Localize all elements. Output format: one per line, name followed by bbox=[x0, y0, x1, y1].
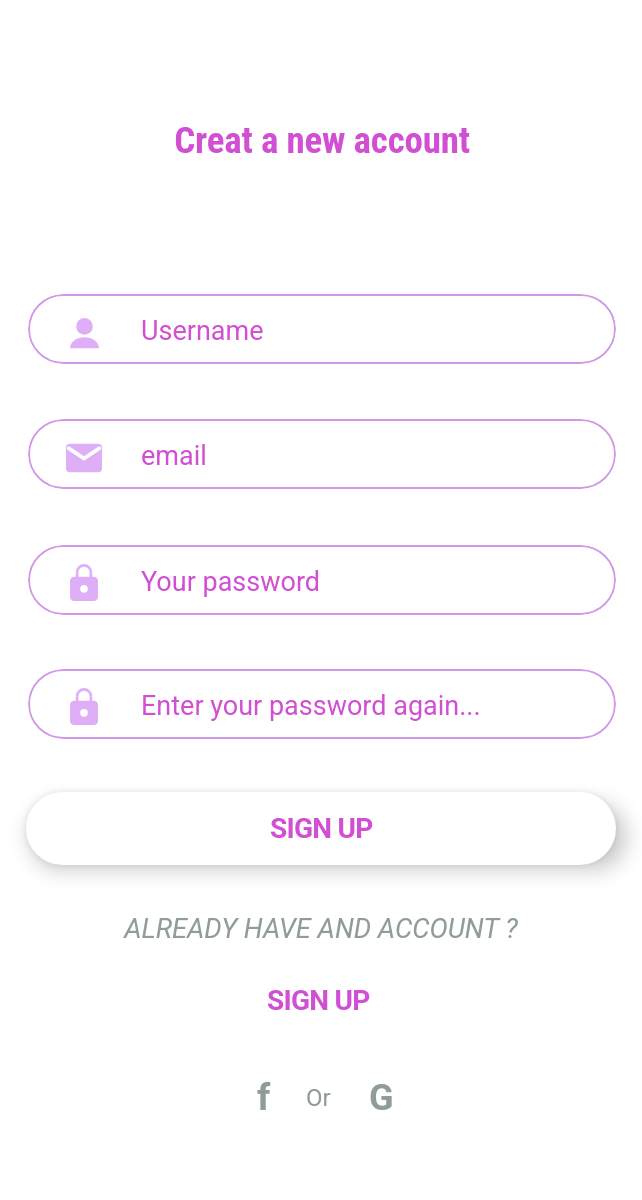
staticText: G bbox=[369, 1077, 394, 1119]
staticText: Your password bbox=[141, 566, 321, 598]
button[interactable]: Your password bbox=[28, 545, 616, 615]
staticText: Enter your password again... bbox=[141, 690, 481, 722]
staticText: Or bbox=[306, 1084, 331, 1112]
button[interactable]: Enter your password again... bbox=[28, 669, 616, 739]
button[interactable]: SIGN UP bbox=[26, 792, 616, 865]
button[interactable]: Username bbox=[28, 294, 616, 364]
button[interactable]: SIGN UP bbox=[257, 978, 380, 1023]
staticText: Creat a new account bbox=[1, 119, 642, 162]
button[interactable]: Sign up with Facebook bbox=[247, 1072, 281, 1123]
staticText: SIGN UP bbox=[270, 812, 373, 845]
staticText: Username bbox=[141, 315, 264, 347]
button[interactable]: email bbox=[28, 419, 616, 489]
staticText: ALREADY HAVE AND ACCOUNT ? bbox=[0, 913, 642, 945]
button[interactable]: Sign up with Google bbox=[359, 1073, 404, 1123]
staticText: f bbox=[257, 1076, 271, 1119]
staticText: email bbox=[141, 440, 207, 472]
